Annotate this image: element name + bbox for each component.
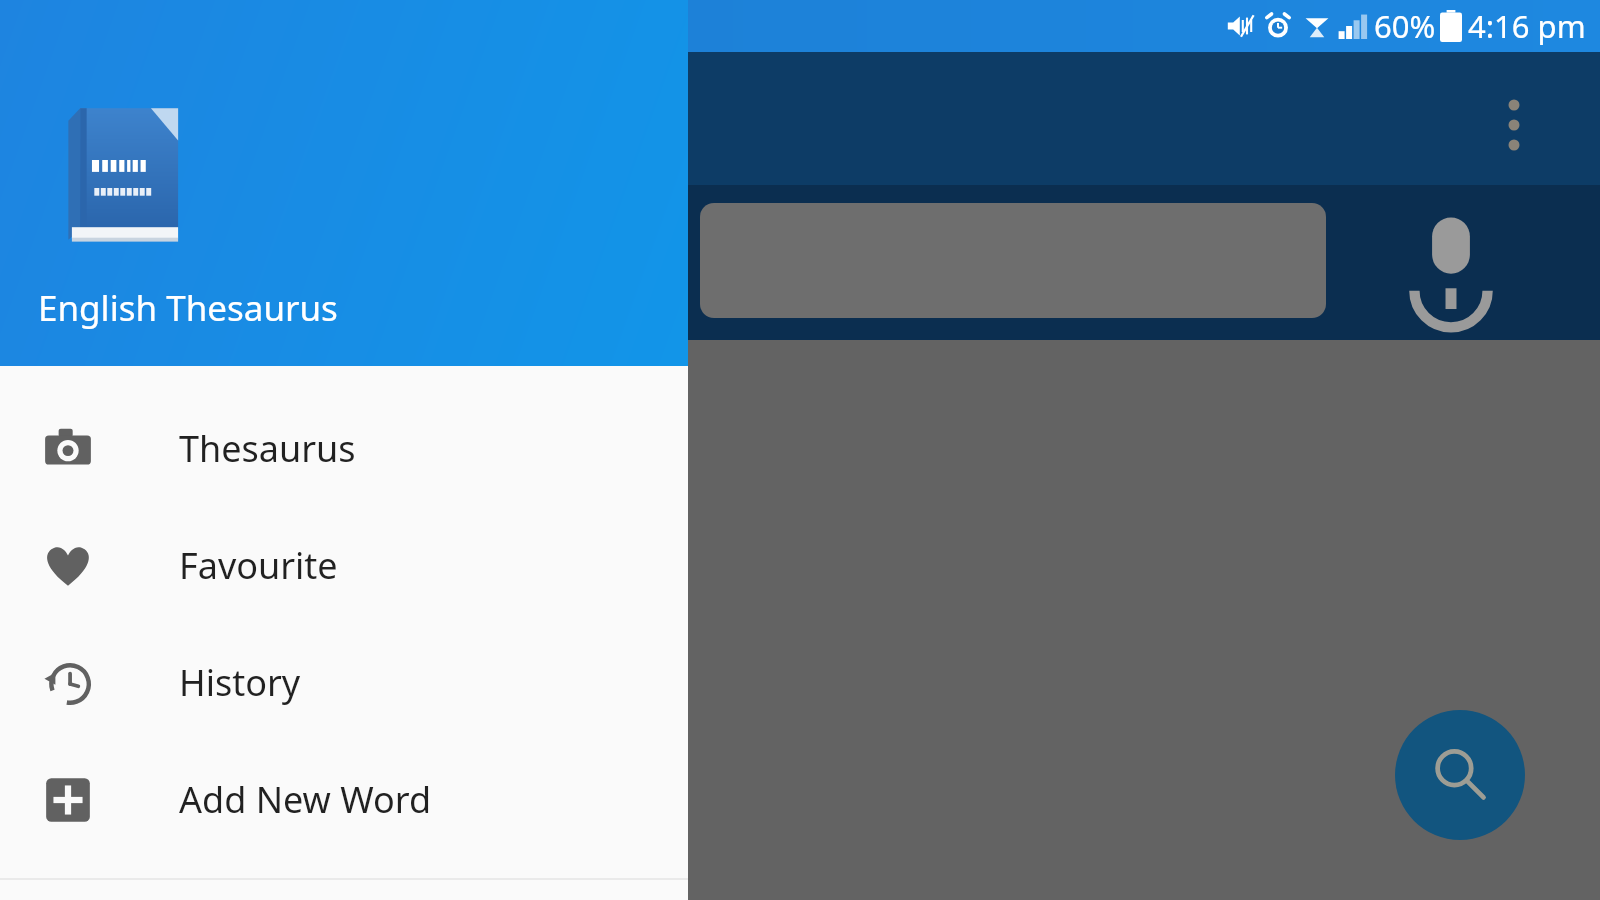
button[interactable]: Search [1395,710,1525,840]
staticText: 60% [1374,5,1436,47]
button[interactable]: Favourite [0,507,688,624]
button[interactable]: More options [1488,85,1540,165]
staticText: Add New Word [179,775,432,824]
staticText: English Thesaurus [38,284,338,332]
staticText: Thesaurus [179,424,356,473]
button[interactable]: Thesaurus [0,390,688,507]
button[interactable]: History [0,624,688,741]
button[interactable] [700,203,1326,318]
button[interactable]: Add New Word [0,741,688,858]
staticText: History [179,658,301,707]
staticText: 4:16 pm [1468,5,1586,47]
button[interactable]: Voice search [1390,198,1512,320]
staticText: Favourite [179,541,338,590]
